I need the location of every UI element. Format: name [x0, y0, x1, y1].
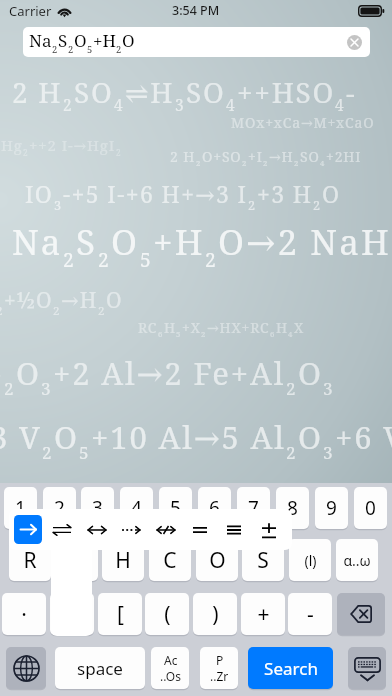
button[interactable]: Search — [248, 647, 333, 689]
button[interactable]: 4 — [120, 487, 153, 529]
button[interactable]: R — [9, 539, 51, 581]
staticText: →H — [269, 147, 294, 166]
staticText: · — [21, 600, 27, 629]
staticText: 3 — [41, 377, 53, 400]
button[interactable]: + — [241, 593, 285, 635]
button[interactable]: O — [196, 539, 238, 581]
button[interactable]: Next keyboard — [6, 647, 46, 689]
staticText: O+SO — [202, 147, 242, 166]
button[interactable]: Symbol — [45, 515, 79, 545]
staticText: 4 — [288, 329, 294, 339]
button[interactable]: 0 — [354, 487, 387, 529]
staticText: 5 — [87, 43, 93, 56]
button[interactable]: 3 — [81, 487, 114, 529]
button[interactable]: H — [102, 539, 144, 581]
staticText: 3 — [323, 377, 335, 400]
staticText: →H — [61, 286, 98, 315]
staticText: +2HI — [326, 147, 362, 166]
button[interactable]: 8 — [276, 487, 309, 529]
staticText: 8 — [287, 495, 298, 521]
button[interactable]: α..ω — [336, 539, 378, 581]
button[interactable]: (l) — [289, 539, 331, 581]
staticText: 2 — [201, 329, 207, 339]
staticText: 2 — [54, 495, 65, 521]
staticText: H — [164, 318, 176, 337]
button[interactable]: C — [149, 539, 191, 581]
staticText: 4 — [114, 95, 125, 116]
button[interactable]: S — [242, 539, 284, 581]
button[interactable]: Symbol — [80, 515, 114, 545]
staticText: O — [122, 29, 135, 52]
button[interactable]: 7 — [237, 487, 270, 529]
staticText: SO — [186, 73, 226, 111]
button[interactable]: Symbol — [217, 515, 251, 545]
staticText: α..ω — [343, 551, 371, 570]
staticText: 2 — [63, 246, 76, 272]
staticText: O — [16, 352, 41, 394]
staticText: Na — [29, 29, 52, 52]
staticText: 2 — [116, 43, 122, 56]
button[interactable]: Hide keyboard — [348, 647, 386, 689]
staticText: +I — [248, 147, 263, 166]
staticText: 2 — [196, 158, 202, 168]
staticText: -+5 I-+6 H+→3 I — [63, 178, 248, 209]
button[interactable]: 9 — [315, 487, 348, 529]
staticText: Search — [264, 657, 318, 680]
staticText: 2 — [68, 43, 74, 56]
staticText: S — [58, 29, 68, 52]
staticText: Ac — [164, 652, 178, 668]
staticText: O — [106, 286, 123, 315]
staticText: O — [298, 416, 323, 458]
staticText: 2 H — [170, 147, 196, 166]
button[interactable]: [ — [98, 593, 142, 635]
staticText: S — [257, 546, 269, 575]
staticText: [ — [117, 600, 124, 629]
staticText: SO — [300, 147, 320, 166]
button[interactable]: Insert arrow — [14, 515, 42, 544]
staticText: H — [276, 318, 288, 337]
staticText: 2 — [263, 158, 269, 168]
button[interactable]: Symbol — [114, 515, 148, 545]
staticText: S — [76, 218, 98, 266]
button[interactable]: P — [200, 647, 238, 689]
staticText: 3:54 PM — [172, 2, 220, 19]
staticText: +H — [93, 29, 116, 52]
button[interactable]: - — [288, 593, 332, 635]
staticText: O — [322, 178, 341, 209]
button[interactable]: Clear text — [347, 35, 362, 50]
button[interactable]: 5 — [159, 487, 192, 529]
button[interactable]: Na — [23, 27, 370, 57]
staticText: 2 — [313, 196, 322, 213]
button[interactable]: Symbol — [252, 515, 286, 545]
button[interactable]: · — [2, 593, 46, 635]
staticText: ..Zr — [210, 668, 229, 684]
button[interactable] — [50, 593, 94, 635]
button[interactable]: Ac — [151, 647, 189, 689]
button[interactable]: ) — [193, 593, 237, 635]
button[interactable]: 2 — [43, 487, 76, 529]
staticText: 2 — [52, 43, 58, 56]
button[interactable]: Symbol — [183, 515, 217, 545]
staticText: - — [307, 600, 314, 629]
staticText: 2 — [205, 246, 218, 272]
staticText: +½O — [4, 286, 53, 315]
button[interactable]: 1 — [4, 487, 37, 529]
staticText: 3 V — [0, 416, 42, 458]
button[interactable]: Delete — [337, 593, 385, 635]
staticText: 4 — [320, 158, 326, 168]
staticText: +3 H — [257, 178, 313, 209]
button[interactable]: space — [55, 647, 145, 689]
button[interactable]: 6 — [198, 487, 231, 529]
staticText: + — [257, 600, 270, 629]
button[interactable]: Symbol — [149, 515, 183, 545]
staticText: ++2 I-→HgI — [29, 135, 116, 155]
staticText: 2 — [63, 95, 74, 116]
staticText: 2 — [242, 158, 248, 168]
staticText: 2 — [42, 441, 54, 464]
staticText: O — [111, 218, 140, 266]
staticText: 5 — [140, 246, 153, 272]
staticText: 4 — [226, 95, 237, 116]
button[interactable]: ( — [145, 593, 189, 635]
button[interactable]: N — [56, 539, 98, 581]
staticText: ) — [212, 600, 219, 629]
